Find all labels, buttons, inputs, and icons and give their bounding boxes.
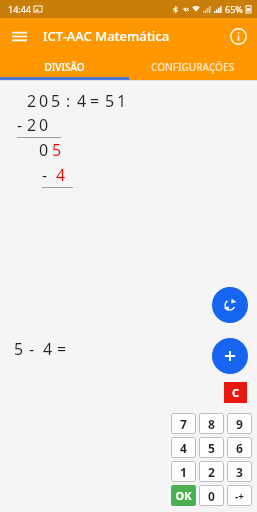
button[interactable]: OK	[171, 485, 196, 506]
staticText: 7	[180, 416, 187, 432]
staticText: 0	[39, 139, 49, 161]
staticText: 6	[236, 440, 243, 456]
staticText: 1	[117, 90, 127, 112]
staticText: 5	[51, 90, 61, 112]
staticText: 4	[77, 90, 87, 112]
button[interactable]: 3	[227, 461, 252, 482]
button[interactable]: Info	[225, 23, 251, 49]
staticText: =	[57, 338, 67, 360]
staticText: 2	[27, 114, 37, 136]
staticText: =	[90, 90, 100, 112]
staticText: 5	[14, 338, 24, 360]
staticText: -	[42, 164, 48, 186]
button[interactable]: CONFIGURAÇÕES	[128, 54, 257, 80]
staticText: 0	[39, 114, 49, 136]
staticText: 4	[43, 338, 53, 360]
button[interactable]: 9	[227, 413, 252, 434]
staticText: 0	[208, 488, 215, 504]
staticText: 3	[236, 464, 243, 480]
button[interactable]: Reset exercise	[212, 287, 248, 323]
button[interactable]: 2	[199, 461, 224, 482]
staticText: 0	[39, 90, 49, 112]
staticText: CONFIGURAÇÕES	[151, 60, 234, 74]
staticText: -	[29, 338, 35, 360]
button[interactable]: DIVISÃO	[0, 54, 128, 80]
button[interactable]: 5	[199, 437, 224, 458]
staticText: 5	[105, 90, 115, 112]
button[interactable]: -+	[227, 485, 252, 506]
button[interactable]: C	[224, 382, 247, 403]
staticText: 5	[52, 139, 62, 161]
button[interactable]: Open navigation menu	[6, 23, 32, 49]
staticText: 65%	[225, 3, 243, 15]
button[interactable]: Add	[212, 338, 248, 374]
staticText: 14:44	[8, 3, 32, 15]
staticText: 8	[208, 416, 215, 432]
staticText: DIVISÃO	[44, 60, 85, 74]
staticText: OK	[175, 488, 192, 503]
staticText: ICT-AAC Matemática	[43, 27, 170, 45]
staticText: 9	[236, 416, 243, 432]
staticText: 4	[56, 164, 66, 186]
staticText: 2	[208, 464, 215, 480]
staticText: 4	[180, 440, 187, 456]
button[interactable]: 1	[171, 461, 196, 482]
staticText: 5	[208, 440, 215, 456]
staticText: :	[66, 90, 71, 112]
staticText: -+	[235, 489, 244, 503]
button[interactable]: 0	[199, 485, 224, 506]
button[interactable]: 7	[171, 413, 196, 434]
staticText: 1	[180, 464, 187, 480]
button[interactable]: 4	[171, 437, 196, 458]
staticText: C	[232, 385, 240, 400]
button[interactable]: 6	[227, 437, 252, 458]
staticText: -	[17, 114, 23, 136]
button[interactable]: 8	[199, 413, 224, 434]
staticText: 2	[27, 90, 37, 112]
